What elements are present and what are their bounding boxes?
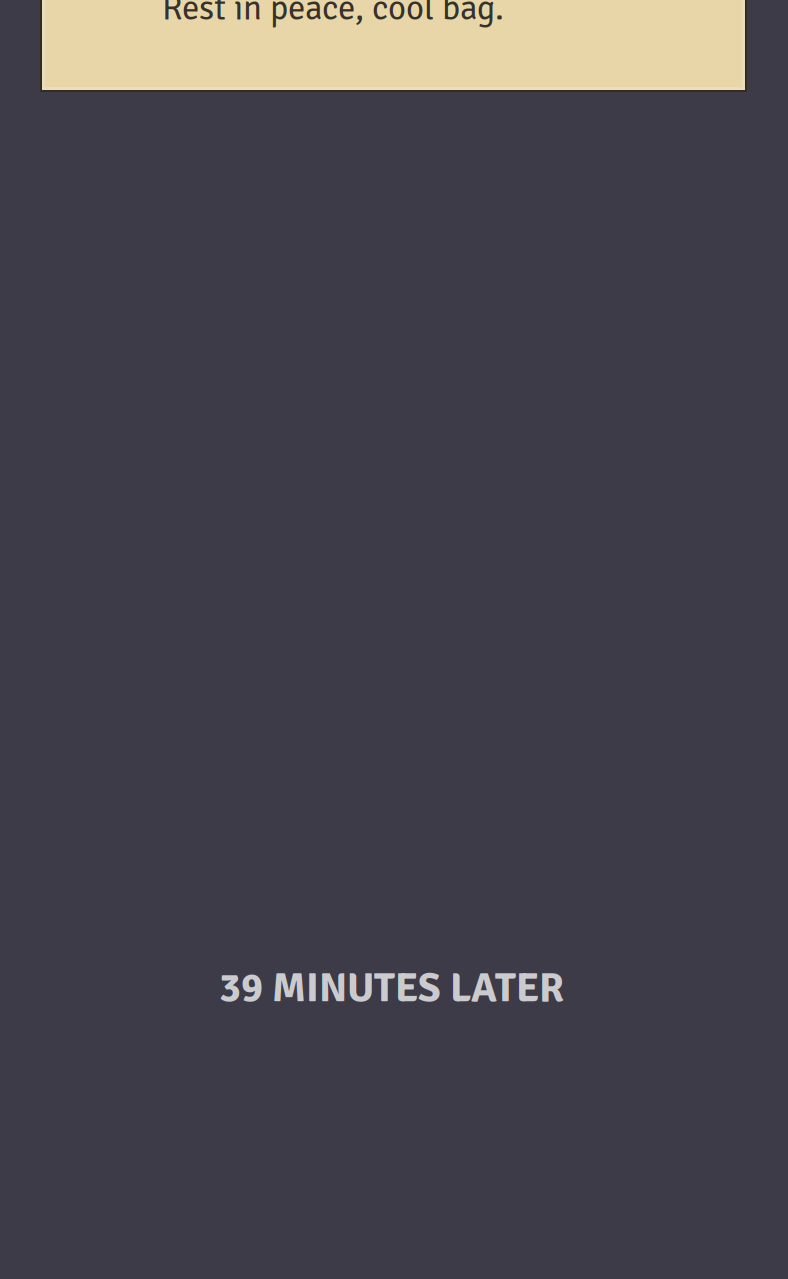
button[interactable]: Rest in peace, cool bag. — [40, 0, 747, 92]
staticText: Rest in peace, cool bag. — [162, 0, 504, 30]
staticText: 39 MINUTES LATER — [219, 963, 564, 1013]
